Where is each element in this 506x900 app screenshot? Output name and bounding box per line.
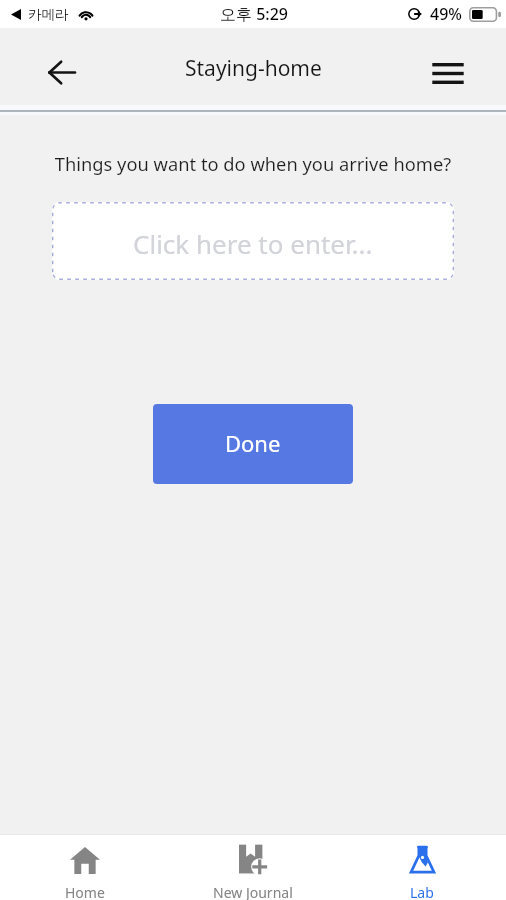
- staticText: Done: [225, 428, 281, 458]
- staticText: 49%: [430, 3, 462, 25]
- staticText: Things you want to do when you arrive ho…: [0, 151, 506, 176]
- staticText: 오후 5:29: [220, 3, 288, 25]
- button[interactable]: Home: [1, 835, 169, 900]
- staticText: 카메라: [28, 6, 69, 23]
- button[interactable]: Back: [36, 46, 88, 98]
- staticText: Home: [65, 883, 105, 900]
- staticText: Click here to enter...: [133, 226, 373, 261]
- button[interactable]: Lab: [338, 835, 506, 900]
- button[interactable]: New Journal: [169, 835, 337, 900]
- staticText: New Journal: [213, 883, 293, 900]
- staticText: Lab: [410, 883, 434, 900]
- button[interactable]: Click here to enter...: [52, 202, 454, 280]
- staticText: Staying-home: [185, 54, 322, 83]
- button[interactable]: Menu: [422, 47, 474, 99]
- button[interactable]: Done: [153, 404, 353, 484]
